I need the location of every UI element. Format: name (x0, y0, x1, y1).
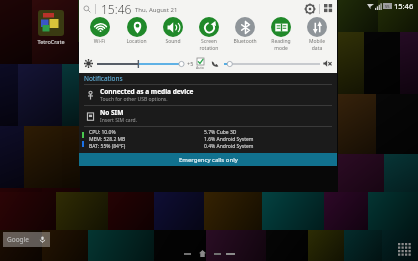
button[interactable]: Bluetooth (227, 17, 263, 45)
button[interactable] (224, 59, 320, 69)
staticText: 0.4% Android System (204, 143, 254, 150)
button[interactable]: Search (83, 5, 91, 13)
staticText: 15:46 (101, 1, 132, 17)
button[interactable]: Wi-Fi (81, 17, 118, 45)
staticText: 15:46 (394, 1, 414, 11)
staticText: 1.6% Android System (204, 136, 254, 143)
staticText: TetroCrate (33, 38, 69, 45)
staticText: Location (118, 38, 155, 45)
staticText: Thu, August 21 (135, 6, 178, 14)
staticText: BAT: 55% (84°F) (89, 143, 126, 150)
staticText: Wi-Fi (81, 38, 118, 45)
button[interactable]: Screen rotation (191, 17, 227, 52)
staticText: 55 (385, 4, 390, 9)
staticText: +5 (187, 60, 194, 67)
staticText: No SIM (100, 108, 124, 117)
staticText: Insert SIM card. (100, 117, 138, 124)
staticText: Google (7, 235, 29, 244)
button[interactable]: No SIM (79, 106, 337, 126)
button[interactable] (97, 59, 185, 69)
staticText: Touch for other USB options. (100, 96, 168, 103)
button[interactable]: Google (3, 232, 50, 247)
button[interactable]: Reading mode (263, 17, 299, 52)
button[interactable]: TetroCrate (33, 10, 69, 45)
button[interactable]: CPU: 10.0% (79, 127, 337, 152)
staticText: Notifications (84, 74, 123, 83)
button[interactable]: Edit quick settings (324, 4, 333, 13)
button[interactable]: Apps (398, 243, 412, 257)
button[interactable]: Location (118, 17, 155, 45)
button[interactable]: Home (199, 250, 206, 257)
staticText: Reading (263, 38, 299, 45)
staticText: Bluetooth (227, 38, 263, 45)
button[interactable]: Sound (155, 17, 191, 45)
button[interactable]: Connected as a media device (79, 85, 337, 105)
other: Voice search (39, 236, 46, 243)
staticText: mode (263, 45, 299, 52)
button[interactable]: Auto brightness (196, 58, 204, 70)
staticText: rotation (191, 45, 227, 52)
staticText: Emergency calls only (179, 156, 238, 164)
staticText: Sound (155, 38, 191, 45)
staticText: Mobile (299, 38, 335, 45)
staticText: Auto (196, 65, 204, 70)
button[interactable]: Emergency calls only (79, 153, 337, 166)
button[interactable]: Mobile data (299, 17, 335, 52)
staticText: MEM: 528.2 MB (89, 136, 126, 143)
staticText: CPU: 10.0% (89, 129, 116, 136)
staticText: Screen (191, 38, 227, 45)
staticText: 5.7% Cube 3D (204, 129, 237, 136)
staticText: data (299, 45, 335, 52)
staticText: Connected as a media device (100, 87, 194, 96)
button[interactable]: Settings (305, 4, 315, 14)
